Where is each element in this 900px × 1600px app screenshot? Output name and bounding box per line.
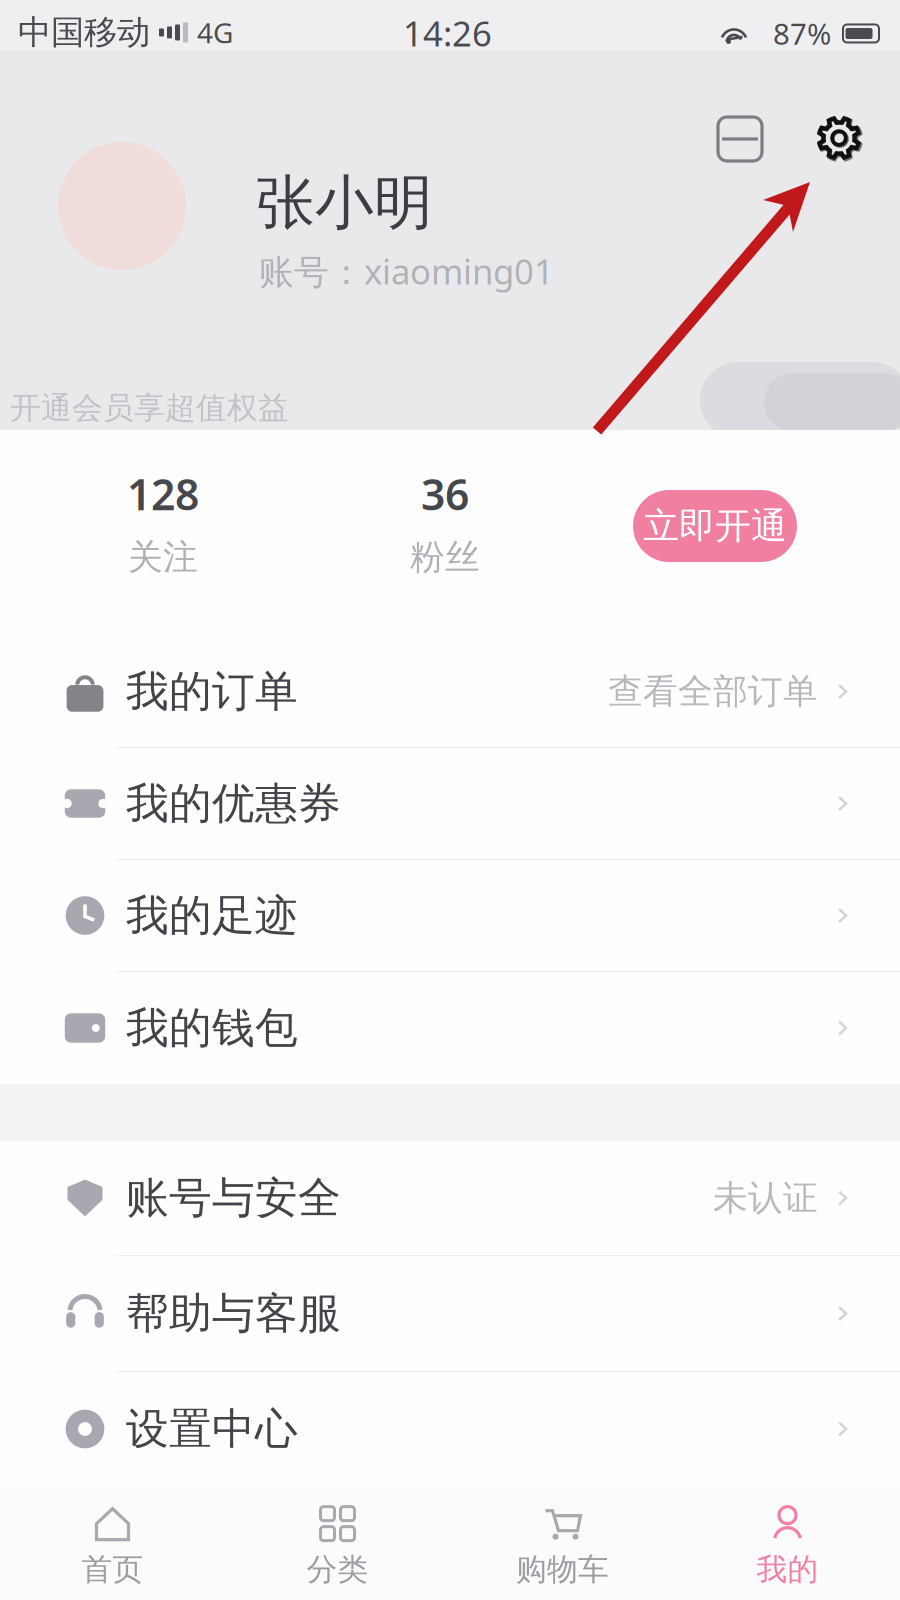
staticText: 128 [127,465,199,522]
staticText: 分类 [306,1551,368,1588]
button[interactable]: 开通会员享超值权益 [0,380,900,436]
staticText: 中国移动 [18,12,150,53]
button[interactable]: 扫一扫 [712,111,768,167]
button[interactable]: 分类 [225,1484,450,1600]
button[interactable]: 立即开通 [633,490,797,562]
staticText: 查看全部订单 [608,670,818,713]
button[interactable]: 头像 [58,142,186,270]
button[interactable]: 我的订单 [0,636,900,748]
button[interactable]: 设置 [812,111,868,167]
staticText: 开通会员享超值权益 [10,389,289,427]
staticText: 我的订单 [126,665,298,718]
staticText: 我的 [756,1551,818,1588]
button[interactable]: 我的优惠券 [0,748,900,860]
button[interactable]: 帮助与客服 [0,1256,900,1372]
button[interactable]: 我的钱包 [0,972,900,1084]
staticText: 关注 [128,536,198,579]
staticText: 36 [421,465,469,522]
button[interactable]: 设置中心 [0,1372,900,1486]
staticText: 14:26 [403,10,492,56]
staticText: 未认证 [713,1177,818,1219]
staticText: 张小明 [256,167,433,239]
staticText: 首页 [81,1551,143,1588]
staticText: 我的钱包 [126,1002,298,1054]
staticText: 我的优惠券 [126,777,341,830]
staticText: 设置中心 [126,1403,298,1455]
button[interactable]: 36 [365,462,525,582]
staticText: 立即开通 [643,504,787,548]
button[interactable]: 购物车 [450,1484,675,1600]
staticText: 购物车 [516,1551,609,1588]
staticText: 我的足迹 [126,889,298,942]
button[interactable]: 我的 [675,1484,900,1600]
button[interactable]: 账号与安全 [0,1141,900,1256]
button[interactable]: 首页 [0,1484,225,1600]
staticText: 87% [773,14,831,53]
staticText: 4G [197,14,233,51]
staticText: 账号：xiaoming01 [259,248,554,294]
button[interactable]: 128 [83,462,243,582]
staticText: 账号与安全 [126,1172,341,1224]
button[interactable]: 我的足迹 [0,860,900,972]
staticText: 帮助与客服 [126,1287,341,1340]
staticText: 粉丝 [410,536,480,579]
